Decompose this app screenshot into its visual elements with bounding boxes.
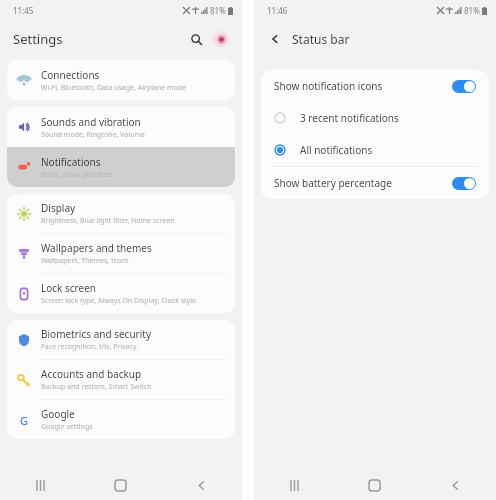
staticText: Sound mode, Ringtone, Volume: [41, 130, 146, 140]
staticText: G: [20, 413, 28, 427]
button[interactable]: Lock screen: [7, 274, 235, 313]
button[interactable]: All notifications: [274, 134, 489, 166]
button[interactable]: Recents: [0, 470, 80, 500]
button[interactable]: Back: [267, 31, 283, 47]
staticText: Google settings: [41, 422, 93, 432]
staticText: Lock screen: [41, 281, 97, 295]
staticText: Wallpapers, Themes, Icons: [41, 256, 129, 266]
button[interactable]: Show notification icons: [274, 70, 476, 102]
staticText: Settings: [13, 30, 63, 48]
staticText: 3 recent notifications: [300, 111, 399, 125]
button[interactable]: Home: [80, 470, 161, 500]
staticText: Backup and restore, Smart Switch: [41, 382, 152, 392]
button[interactable]: Back: [161, 470, 242, 500]
staticText: 11:46: [267, 5, 288, 16]
staticText: Accounts and backup: [41, 367, 142, 381]
button[interactable]: G: [7, 400, 235, 439]
button[interactable]: Back: [415, 470, 496, 500]
button[interactable]: 3 recent notifications: [274, 102, 489, 134]
button[interactable]: Display: [7, 194, 235, 233]
staticText: Block, allow, prioritize: [41, 170, 113, 180]
staticText: 81%: [210, 5, 226, 16]
button[interactable]: Accounts and backup: [7, 360, 235, 399]
staticText: Show battery percentage: [274, 176, 392, 190]
staticText: Face recognition, Iris, Privacy: [41, 342, 137, 352]
staticText: 11:45: [13, 5, 34, 16]
button[interactable]: Show battery percentage: [274, 167, 476, 199]
staticText: Wi-Fi, Bluetooth, Data usage, Airplane m…: [41, 83, 187, 93]
staticText: Brightness, Blue light filter, Home scre…: [41, 216, 175, 226]
staticText: Screen lock type, Always On Display, Clo…: [41, 296, 196, 306]
button[interactable]: Sounds and vibration: [7, 107, 235, 147]
button[interactable]: Home: [334, 470, 415, 500]
staticText: Wallpapers and themes: [41, 241, 152, 255]
staticText: 81%: [464, 5, 480, 16]
button[interactable]: Notifications: [7, 147, 235, 187]
staticText: Display: [41, 201, 76, 215]
button[interactable]: Biometrics and security: [7, 320, 235, 359]
button[interactable]: Connections: [7, 60, 235, 100]
staticText: Biometrics and security: [41, 327, 151, 341]
staticText: Notifications: [41, 155, 101, 169]
staticText: All notifications: [300, 143, 373, 157]
button[interactable]: Wallpapers and themes: [7, 234, 235, 273]
staticText: Connections: [41, 68, 100, 82]
staticText: Show notification icons: [274, 79, 383, 93]
button[interactable]: Search: [185, 28, 207, 50]
staticText: Sounds and vibration: [41, 115, 141, 129]
button[interactable]: Recents: [254, 470, 334, 500]
staticText: Google: [41, 407, 75, 421]
button[interactable]: Account: [213, 31, 229, 47]
staticText: Status bar: [292, 31, 350, 47]
